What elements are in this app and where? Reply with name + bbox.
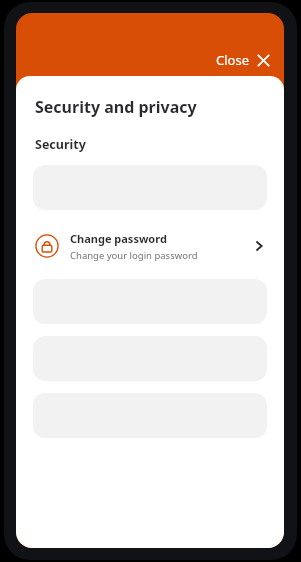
staticText: Security and privacy <box>35 96 197 118</box>
other: Change password <box>35 234 59 258</box>
staticText: Change your login password <box>70 249 198 262</box>
button[interactable]: Change password <box>16 222 284 270</box>
button[interactable]: Close <box>212 48 274 72</box>
staticText: Close <box>216 51 249 69</box>
staticText: Security <box>35 136 86 153</box>
staticText: Change password <box>70 231 167 246</box>
